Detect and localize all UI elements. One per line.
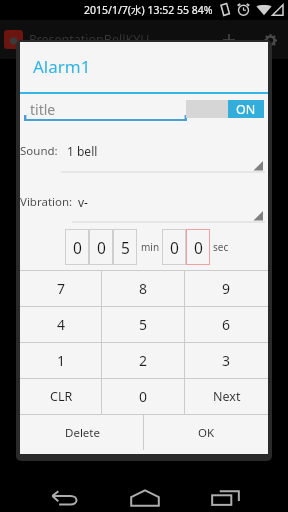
button[interactable]: OK [144,415,268,450]
staticText: min [141,240,160,254]
staticText: 3 [222,351,231,370]
button[interactable]: 9 [185,271,268,306]
button[interactable]: Delete [20,415,144,450]
staticText: 4 [57,315,66,334]
button[interactable] [72,190,265,223]
staticText: 1 [57,351,66,370]
staticText: OK [198,425,215,441]
button[interactable]: Back [42,476,86,512]
button[interactable]: CLR [20,379,102,414]
staticText: 0 [170,237,179,258]
staticText: 0 [139,387,148,406]
staticText: 0 [194,237,203,258]
staticText: 7 [57,279,66,298]
button[interactable] [61,139,265,173]
button[interactable]: 0 [186,229,210,265]
staticText: 2 [139,351,148,370]
button[interactable]: 6 [185,307,268,342]
staticText: v- [78,194,88,210]
button[interactable]: 0 [89,229,113,265]
staticText: 1 bell [67,143,98,159]
button[interactable]: 4 [20,307,102,342]
staticText: sec [213,240,229,254]
button[interactable]: Home [123,476,167,512]
staticText: Sound: [20,143,58,159]
staticText: 2015/1/7(水) 13:52 55 84% [84,3,213,17]
staticText: 5 [121,237,130,258]
staticText: Vibration: [20,194,73,210]
button[interactable]: 0 [102,379,185,414]
staticText: Next [213,388,241,405]
staticText: title [30,100,56,119]
button[interactable]: 1 [20,343,102,378]
button[interactable]: 5 [102,307,185,342]
staticText: ON [236,101,256,118]
button[interactable]: title [24,98,187,122]
button[interactable]: 5 [113,229,137,265]
staticText: 0 [73,237,82,258]
button[interactable]: Settings [259,29,281,51]
staticText: 6 [222,315,231,334]
button[interactable]: 0 [162,229,186,265]
button[interactable]: 0 [65,229,89,265]
staticText: 8 [139,279,148,298]
button[interactable]: 3 [185,343,268,378]
button[interactable]: 7 [20,271,102,306]
button[interactable]: 2 [102,343,185,378]
staticText: 0 [97,237,106,258]
button[interactable]: Next [185,379,268,414]
button[interactable]: Add alarm [218,29,240,51]
staticText: CLR [50,388,73,405]
staticText: Alarm1 [33,55,91,78]
button[interactable]: Recent apps [203,476,247,512]
staticText: Delete [65,425,100,441]
button[interactable]: ON [186,100,264,118]
staticText: 5 [139,315,148,334]
staticText: PresentationBellKYU [29,31,150,48]
button[interactable]: 8 [102,271,185,306]
staticText: 9 [222,279,231,298]
